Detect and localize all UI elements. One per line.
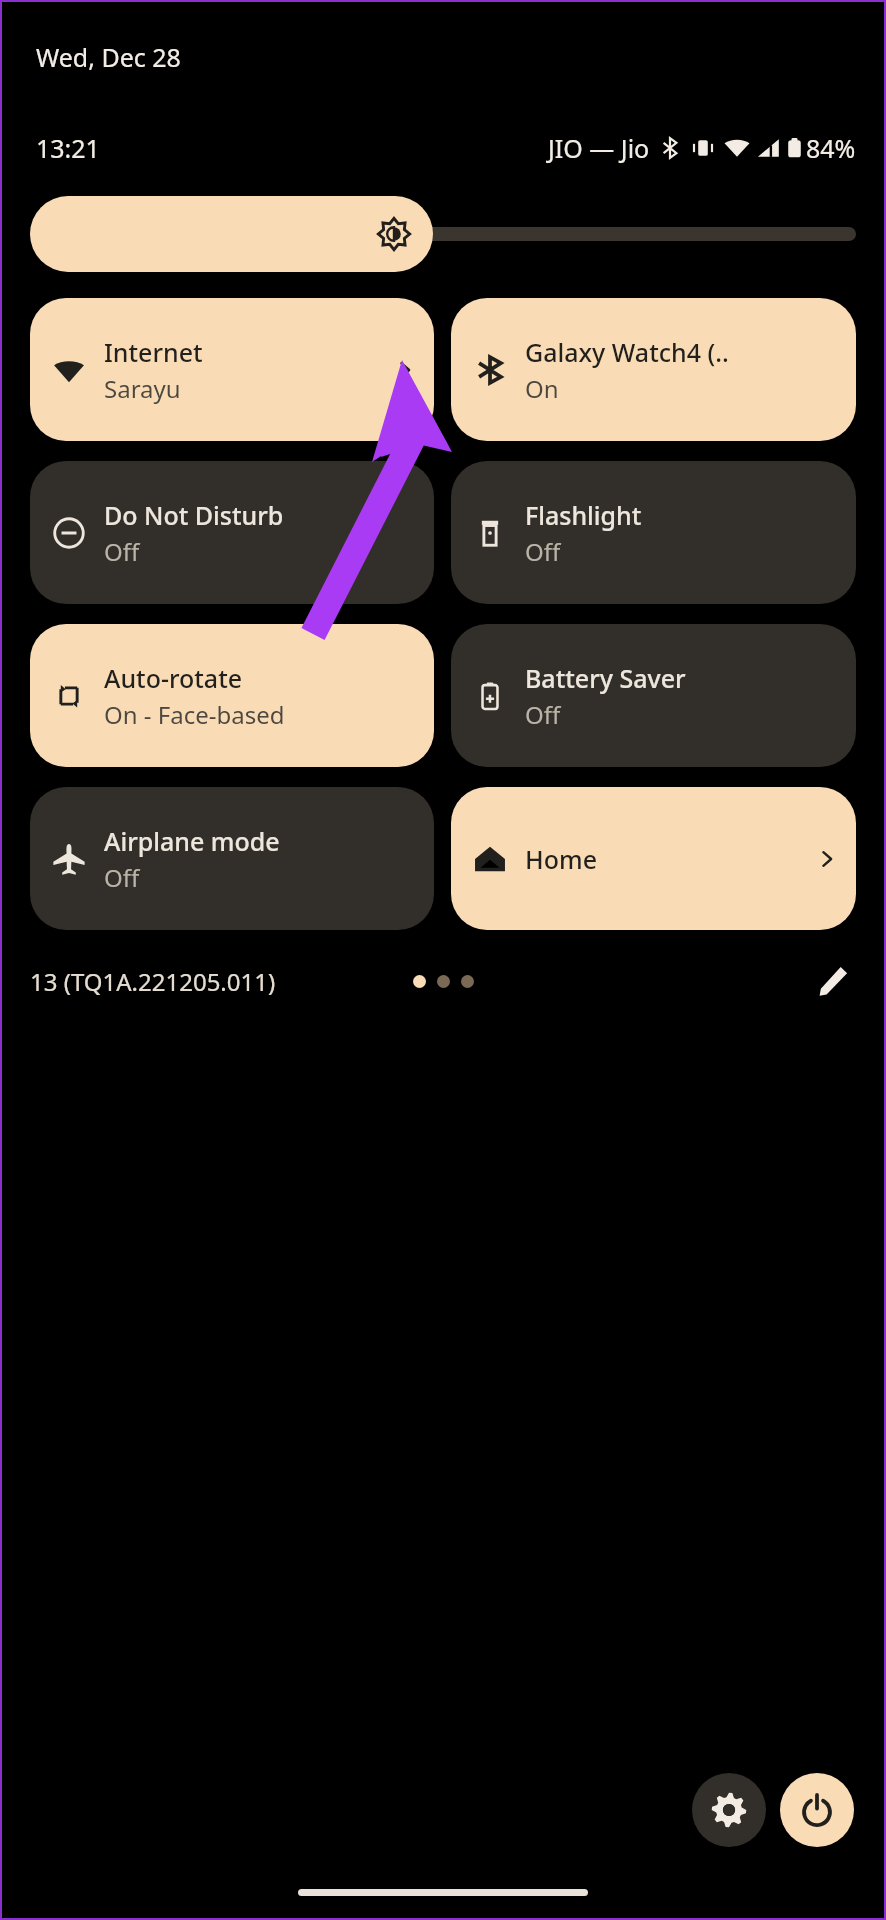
- staticText: On - Face-based: [104, 698, 285, 731]
- button[interactable]: Auto-rotate: [30, 624, 434, 767]
- staticText: JIO — Jio: [548, 131, 650, 165]
- button[interactable]: Flashlight: [451, 461, 856, 604]
- button[interactable]: Home: [451, 787, 856, 930]
- button[interactable]: Settings: [692, 1773, 766, 1847]
- staticText: Off: [104, 861, 140, 894]
- staticText: 84%: [806, 131, 856, 165]
- staticText: 13 (TQ1A.221205.011): [30, 965, 276, 998]
- staticText: Auto-rotate: [104, 661, 243, 695]
- staticText: On: [525, 372, 559, 405]
- staticText: Do Not Disturb: [104, 498, 284, 532]
- staticText: Internet: [104, 335, 203, 369]
- staticText: Sarayu: [104, 372, 181, 405]
- staticText: Off: [525, 535, 561, 568]
- button[interactable]: Internet: [30, 298, 434, 441]
- staticText: Flashlight: [525, 498, 642, 532]
- staticText: Battery Saver: [525, 661, 686, 695]
- staticText: Home: [525, 842, 598, 876]
- button[interactable]: Battery Saver: [451, 624, 856, 767]
- button[interactable]: Edit tiles: [810, 958, 856, 1004]
- button[interactable]: Airplane mode: [30, 787, 434, 930]
- staticText: Airplane mode: [104, 824, 280, 858]
- staticText: Off: [104, 535, 140, 568]
- button[interactable]: Do Not Disturb: [30, 461, 434, 604]
- button[interactable]: Brightness: [30, 196, 856, 272]
- button[interactable]: Power: [780, 1773, 854, 1847]
- button[interactable]: Galaxy Watch4 (..: [451, 298, 856, 441]
- staticText: Wed, Dec 28: [36, 40, 181, 74]
- staticText: 13:21: [36, 131, 100, 165]
- staticText: Galaxy Watch4 (..: [525, 335, 729, 369]
- staticText: Off: [525, 698, 561, 731]
